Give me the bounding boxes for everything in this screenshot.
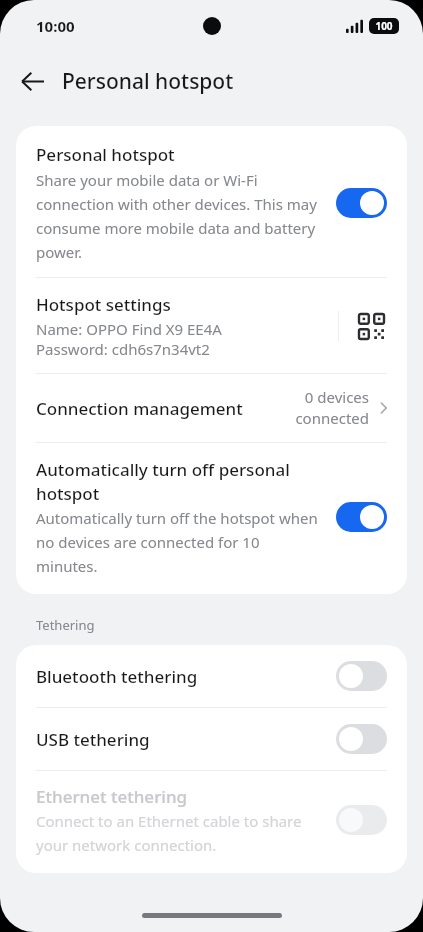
button[interactable]: Ethernet tethering bbox=[16, 771, 407, 873]
staticText: Automatically turn off the hotspot when … bbox=[36, 508, 320, 576]
button[interactable]: Ethernet tethering bbox=[336, 805, 387, 835]
button[interactable]: Share hotspot QR code bbox=[355, 310, 387, 342]
button[interactable]: Back bbox=[8, 57, 56, 105]
staticText: Personal hotspot bbox=[36, 143, 175, 166]
staticText: Share your mobile data or Wi-Fi connecti… bbox=[36, 170, 320, 262]
staticText: Connect to an Ethernet cable to share yo… bbox=[36, 811, 320, 855]
staticText: Ethernet tethering bbox=[36, 785, 188, 808]
button[interactable]: Automatically turn off personal hotspot bbox=[336, 502, 387, 532]
staticText: Connection management bbox=[36, 397, 295, 420]
button[interactable]: USB tethering bbox=[16, 708, 407, 770]
staticText: Personal hotspot bbox=[62, 67, 234, 96]
button[interactable]: Connection management bbox=[16, 374, 407, 442]
button[interactable]: Automatically turn off personal hotspot bbox=[16, 443, 407, 594]
button[interactable]: Personal hotspot bbox=[336, 188, 387, 218]
staticText: Name: OPPO Find X9 EE4A bbox=[36, 319, 222, 339]
staticText: Bluetooth tethering bbox=[36, 665, 336, 688]
button[interactable]: Bluetooth tethering bbox=[16, 645, 407, 707]
staticText: USB tethering bbox=[36, 728, 336, 751]
staticText: Automatically turn off personal hotspot bbox=[36, 458, 320, 505]
staticText: 10:00 bbox=[36, 16, 75, 36]
button[interactable]: USB tethering bbox=[336, 724, 387, 754]
button[interactable]: Hotspot settings bbox=[16, 278, 407, 373]
staticText: 100 bbox=[375, 19, 393, 33]
staticText: 0 devices connected bbox=[295, 387, 369, 429]
button[interactable]: Bluetooth tethering bbox=[336, 661, 387, 691]
staticText: Tethering bbox=[36, 616, 95, 634]
button[interactable]: Personal hotspot bbox=[16, 126, 407, 277]
staticText: Password: cdh6s7n34vt2 bbox=[36, 339, 210, 359]
staticText: Hotspot settings bbox=[36, 293, 171, 316]
